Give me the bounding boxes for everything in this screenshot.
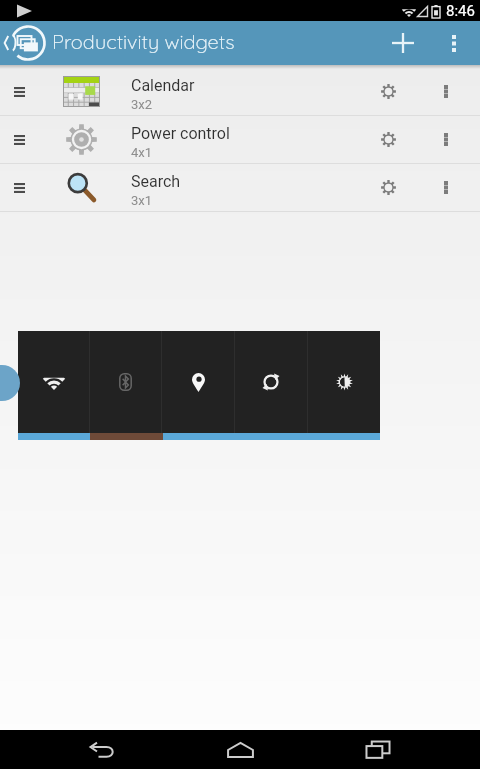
- button[interactable]: More options: [417, 116, 475, 163]
- button[interactable]: Widget settings: [359, 116, 417, 163]
- button[interactable]: More options: [431, 21, 477, 65]
- button[interactable]: Navigate up: [0, 21, 52, 65]
- button[interactable]: Widget settings: [359, 164, 417, 211]
- button[interactable]: Location: [162, 331, 234, 433]
- staticText: Productivity widgets: [52, 29, 235, 54]
- button[interactable]: Home: [204, 730, 276, 769]
- staticText: 3x1: [131, 193, 153, 208]
- button[interactable]: Calendar: [0, 68, 480, 115]
- staticText: Power control: [131, 124, 230, 143]
- staticText: Calendar: [131, 76, 195, 95]
- button[interactable]: Power control: [0, 116, 480, 163]
- button[interactable]: Add widget: [375, 21, 431, 65]
- button[interactable]: Wi-Fi: [18, 331, 89, 433]
- button[interactable]: Bluetooth: [90, 331, 161, 433]
- button[interactable]: More options: [417, 164, 475, 211]
- button[interactable]: Widget settings: [359, 68, 417, 115]
- staticText: 8:46: [446, 2, 475, 20]
- button[interactable]: Recent apps: [342, 730, 414, 769]
- staticText: 4x1: [131, 145, 153, 160]
- button[interactable]: Search: [0, 164, 480, 211]
- button[interactable]: Back: [66, 730, 138, 769]
- staticText: Search: [131, 172, 181, 191]
- button[interactable]: More options: [417, 68, 475, 115]
- button[interactable]: Brightness: [308, 331, 380, 433]
- button[interactable]: Sync: [235, 331, 307, 433]
- staticText: 3x2: [131, 97, 153, 112]
